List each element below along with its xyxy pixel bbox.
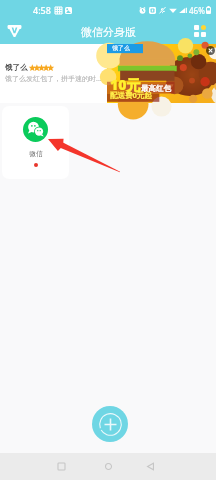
staticText: 配送费0元起 bbox=[110, 90, 152, 100]
button[interactable]: Recent apps bbox=[43, 453, 79, 480]
button[interactable]: Grid menu bbox=[194, 25, 206, 37]
staticText: 4:58 bbox=[33, 4, 51, 16]
button[interactable]: 微信 bbox=[2, 106, 69, 179]
staticText: 饿了么发红包了，拼手速的时... bbox=[5, 74, 102, 84]
button[interactable]: Add app bbox=[92, 406, 128, 442]
staticText: 46% bbox=[189, 5, 205, 16]
button[interactable]: 饿了么 bbox=[0, 44, 216, 103]
staticText: 饿了么 bbox=[5, 63, 28, 72]
staticText: 最高红包 bbox=[141, 84, 171, 93]
button[interactable]: Close ad bbox=[206, 46, 215, 55]
button[interactable]: Home bbox=[90, 453, 126, 480]
button[interactable]: App logo bbox=[7, 23, 22, 38]
button[interactable]: Back bbox=[132, 453, 168, 480]
staticText: 微信 bbox=[29, 149, 43, 158]
staticText: 10元 bbox=[110, 75, 141, 94]
staticText: 微信分身版 bbox=[81, 25, 136, 39]
staticText: 饿了么 bbox=[112, 44, 130, 52]
